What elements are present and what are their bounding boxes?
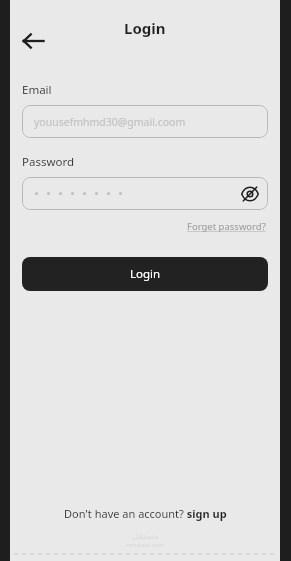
button[interactable]: Back bbox=[16, 24, 50, 58]
staticText: مستقل bbox=[132, 531, 159, 541]
staticText: Login bbox=[130, 266, 161, 282]
staticText: Password bbox=[22, 154, 75, 170]
button[interactable]: youusefmhmd30@gmail.coom bbox=[22, 105, 268, 138]
button[interactable]: Toggle password visibility bbox=[22, 177, 268, 210]
staticText: Login bbox=[124, 18, 166, 38]
staticText: mostaql.com bbox=[127, 541, 164, 549]
button[interactable]: Login bbox=[22, 257, 268, 291]
staticText: Email bbox=[22, 82, 52, 98]
staticText: Forget password? bbox=[187, 220, 266, 233]
staticText: Don't have an account? sign up bbox=[64, 506, 227, 521]
staticText: youusefmhmd30@gmail.coom bbox=[34, 115, 186, 129]
button[interactable]: Forget password? bbox=[185, 218, 268, 235]
button[interactable]: Don't have an account? sign up bbox=[60, 502, 231, 525]
button[interactable]: Toggle password visibility bbox=[236, 180, 264, 208]
